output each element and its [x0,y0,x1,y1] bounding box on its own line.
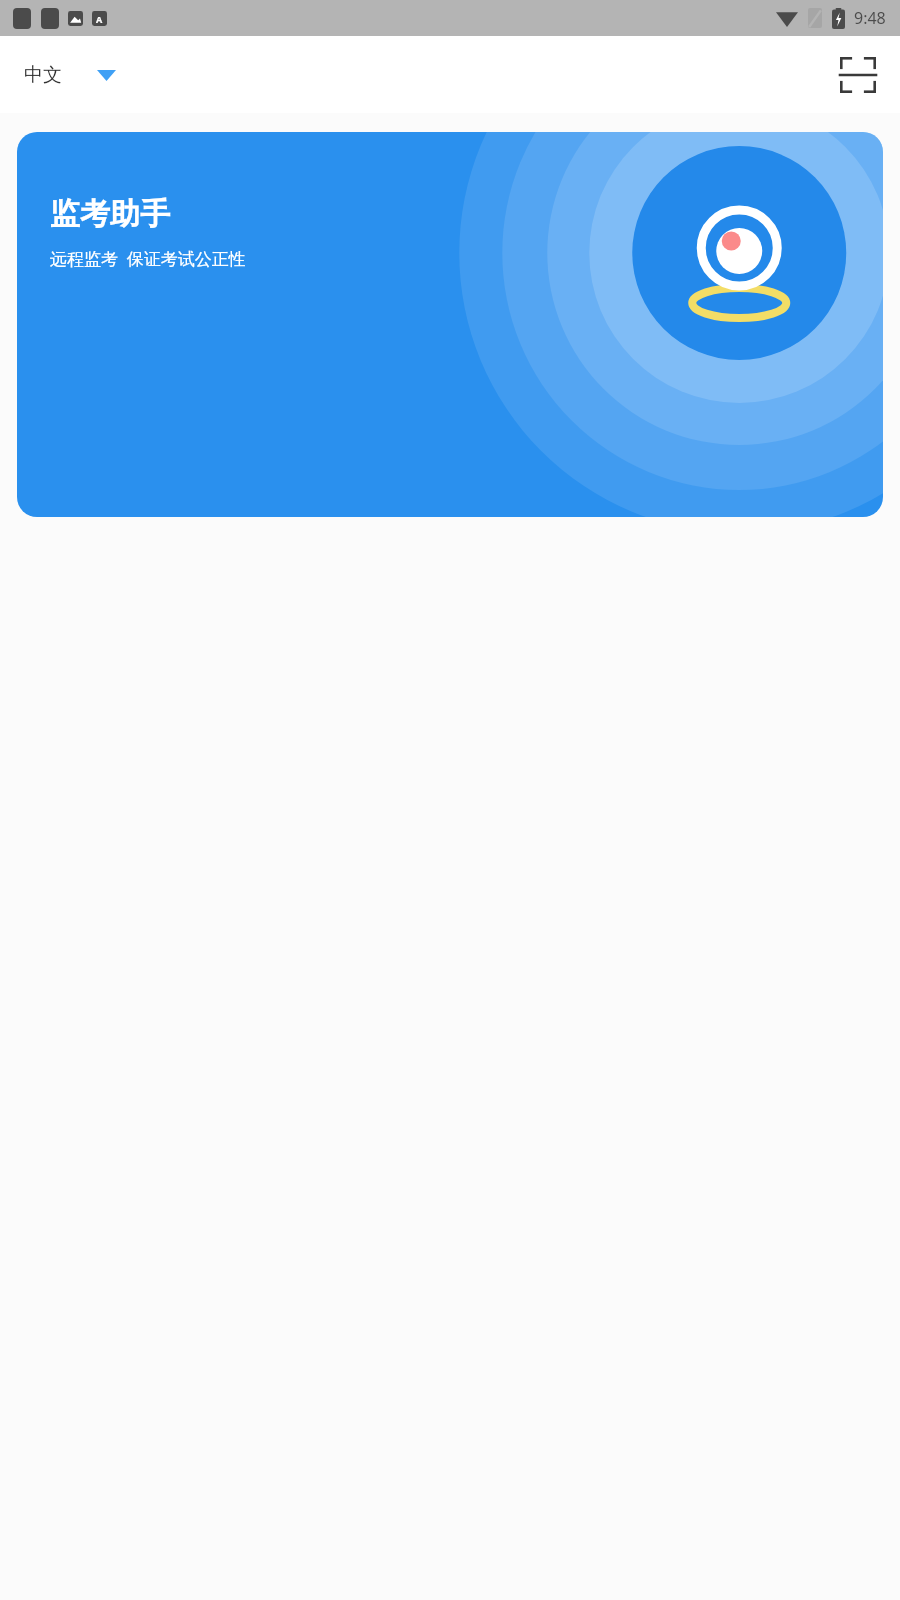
staticText: A [96,13,103,25]
button[interactable]: 监考助手 [17,132,883,517]
staticText: 远程监考 保证考试公正性 [50,247,246,270]
staticText: 9:48 [854,7,886,29]
button[interactable]: Scan QR code [830,47,886,103]
staticText: 监考助手 [50,195,170,233]
button[interactable]: 中文 [0,53,134,97]
staticText: 中文 [24,63,62,87]
